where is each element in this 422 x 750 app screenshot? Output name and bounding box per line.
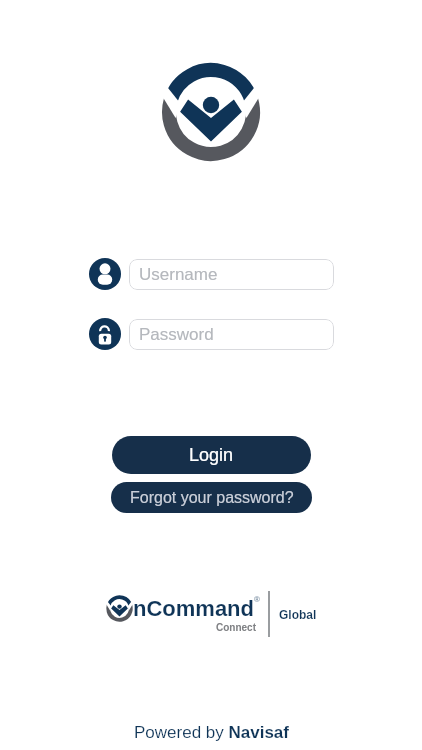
button[interactable]: Password [129,319,334,350]
staticText: Login [189,445,234,465]
staticText: ® [254,595,260,604]
staticText: Username [139,265,218,284]
staticText: Password [139,325,214,344]
button[interactable]: Username [129,259,334,290]
staticText: Global [279,608,317,621]
staticText: Powered by Navisaf [134,723,289,742]
button[interactable]: Login [112,436,311,474]
staticText: Forgot your password? [130,489,294,507]
button[interactable]: Forgot your password? [111,482,312,513]
staticText: Connect [216,622,256,633]
staticText: nCommand [133,596,254,621]
